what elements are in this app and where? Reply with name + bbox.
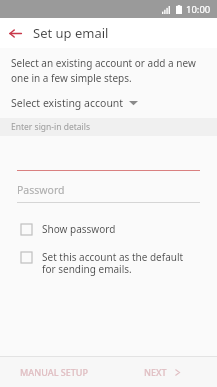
button[interactable]: Set this account as the default for send… — [0, 247, 217, 279]
staticText: Set this account as the default for send… — [42, 250, 184, 276]
button[interactable]: NEXT — [108, 357, 217, 387]
button[interactable]: Show password — [0, 219, 217, 239]
staticText: Select existing account — [11, 96, 124, 110]
button[interactable]: MANUAL SETUP — [0, 357, 108, 387]
staticText: 10:00 — [186, 3, 211, 16]
staticText: Set up email — [33, 24, 109, 42]
staticText: MANUAL SETUP — [20, 366, 88, 378]
staticText: Show password — [42, 222, 116, 236]
staticText: Select an existing account or add a new … — [11, 56, 203, 85]
staticText: Enter sign-in details — [11, 121, 91, 133]
staticText: Password — [17, 183, 65, 197]
button[interactable]: Password — [0, 183, 217, 203]
button[interactable] — [0, 158, 217, 171]
button[interactable]: Select existing account — [0, 94, 217, 114]
staticText: NEXT — [144, 366, 167, 378]
button[interactable]: Back — [0, 18, 30, 48]
